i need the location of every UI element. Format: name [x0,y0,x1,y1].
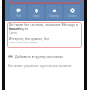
button[interactable]: Notifications [28,5,44,19]
staticText: Сервер [49,14,60,18]
button[interactable]: Storage [46,5,62,19]
staticText: Стиль [68,14,77,18]
staticText: Вот может управлять группой или каналом [8,64,72,68]
staticText: Добавить в группу или канал [15,54,64,59]
staticText: Чат [16,14,21,18]
staticText: Звук [33,14,40,18]
staticText: Сайты [9,31,17,35]
staticText: очень много раз подряд [9,40,38,43]
button[interactable]: Appearance [64,5,80,19]
staticText: Вы также бот системы, напишите Message и… [9,23,82,31]
button[interactable]: Добавить в группу или канал [8,53,84,60]
button[interactable]: Messages [10,5,26,19]
staticText: Интернет, бот думать, бот [9,37,50,41]
button[interactable]: Вы также бот системы, напишите Message и… [7,22,82,48]
staticText: Копия? [9,27,20,31]
